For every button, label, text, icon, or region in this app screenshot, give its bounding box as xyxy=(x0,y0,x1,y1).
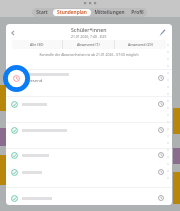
button[interactable] xyxy=(11,192,164,204)
staticText: Abwesend (1) xyxy=(77,42,100,47)
button[interactable]: Profil xyxy=(128,9,146,16)
button[interactable]: Abwesend xyxy=(11,72,164,84)
staticText: Stundenplan xyxy=(57,9,87,16)
button[interactable]: Start xyxy=(33,9,51,16)
staticText: Schüler*innen xyxy=(71,26,107,33)
button[interactable]: Back xyxy=(7,27,18,38)
staticText: Mitteilungen xyxy=(94,9,125,16)
button[interactable]: Stundenplan xyxy=(53,9,91,16)
button[interactable] xyxy=(11,166,164,178)
staticText: Abwesend xyxy=(22,78,43,84)
staticText: Kontrolle der Abwesenheiten ist ab 21.01… xyxy=(6,52,172,57)
button[interactable]: Edit xyxy=(157,27,167,37)
button[interactable]: Mitteilungen xyxy=(93,9,126,16)
staticText: Anwesend (29) xyxy=(128,42,153,47)
staticText: Alle (30) xyxy=(30,42,44,47)
button[interactable]: Anwesend (29) xyxy=(115,40,166,49)
staticText: Profil xyxy=(131,9,144,16)
staticText: 21.01.2026, 7:40 - 8:25 xyxy=(71,34,107,39)
button[interactable]: Alle (30) xyxy=(12,40,62,49)
staticText: Start xyxy=(36,9,48,16)
button[interactable] xyxy=(11,149,164,161)
button[interactable] xyxy=(11,124,164,136)
button[interactable]: Abwesend (1) xyxy=(63,40,114,49)
button[interactable] xyxy=(11,98,164,110)
